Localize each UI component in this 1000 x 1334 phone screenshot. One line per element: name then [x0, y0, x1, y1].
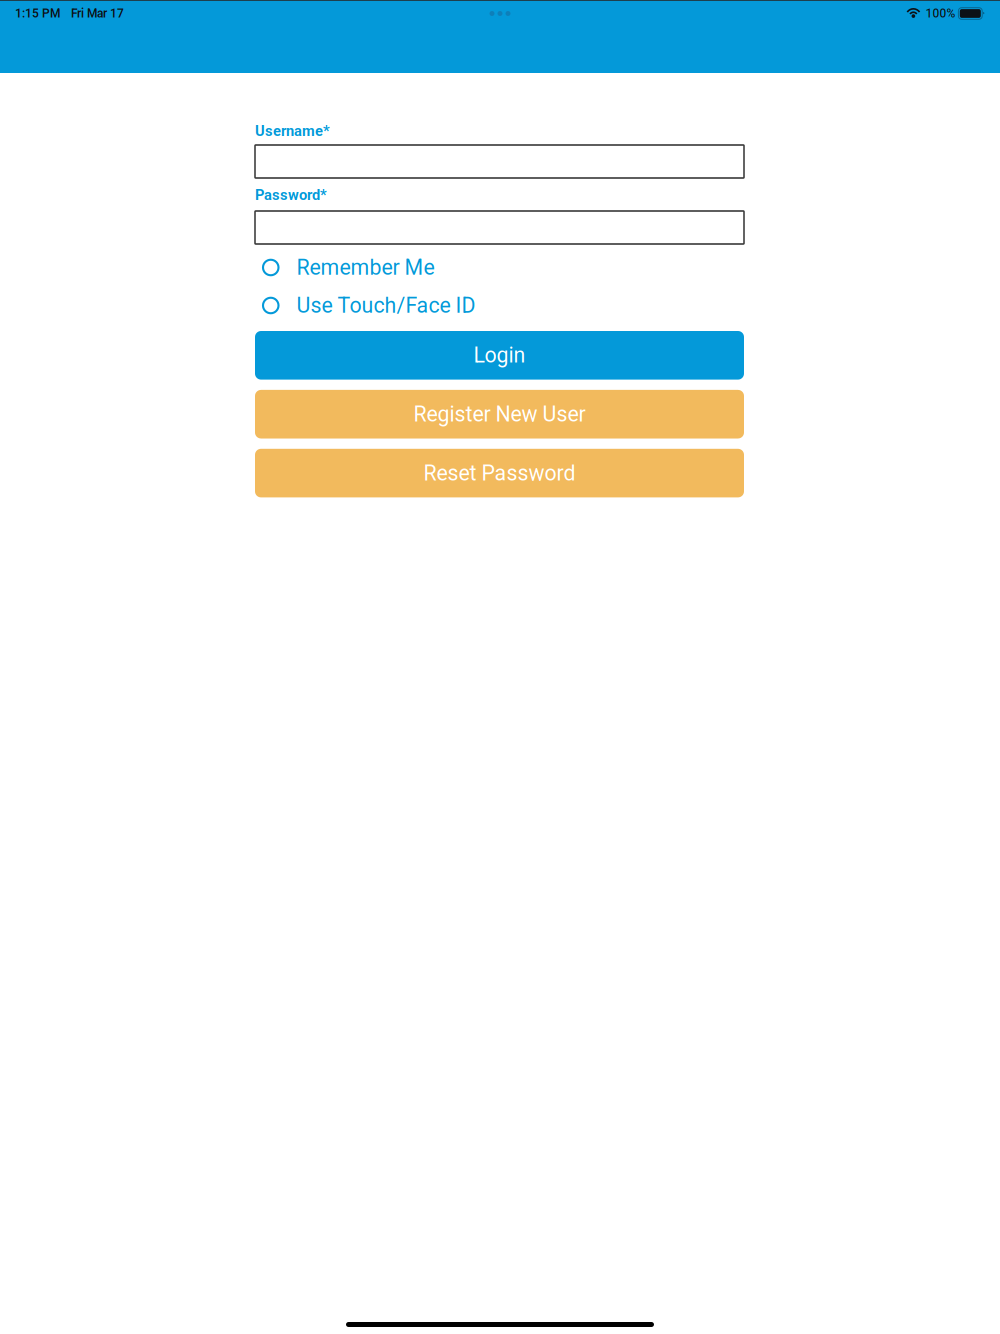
staticText: Reset Password [423, 461, 575, 486]
staticText: Login [473, 343, 525, 368]
button[interactable]: Reset Password [255, 449, 744, 497]
button[interactable]: Text field [255, 211, 744, 244]
button[interactable]: Login [255, 331, 744, 380]
staticText: Use Touch/Face ID [296, 293, 475, 318]
staticText: Remember Me [296, 255, 434, 280]
button[interactable]: Remember Me [255, 257, 744, 278]
staticText: 1:15 PM [15, 6, 60, 21]
staticText: Password* [255, 186, 327, 204]
button[interactable]: Register New User [255, 390, 744, 438]
button[interactable]: Text field [255, 145, 744, 178]
button[interactable]: Use Touch/Face ID [255, 295, 744, 316]
staticText: Username* [255, 122, 330, 140]
staticText: Fri Mar 17 [71, 6, 124, 21]
staticText: 100% [925, 6, 955, 21]
staticText: Register New User [413, 402, 585, 427]
